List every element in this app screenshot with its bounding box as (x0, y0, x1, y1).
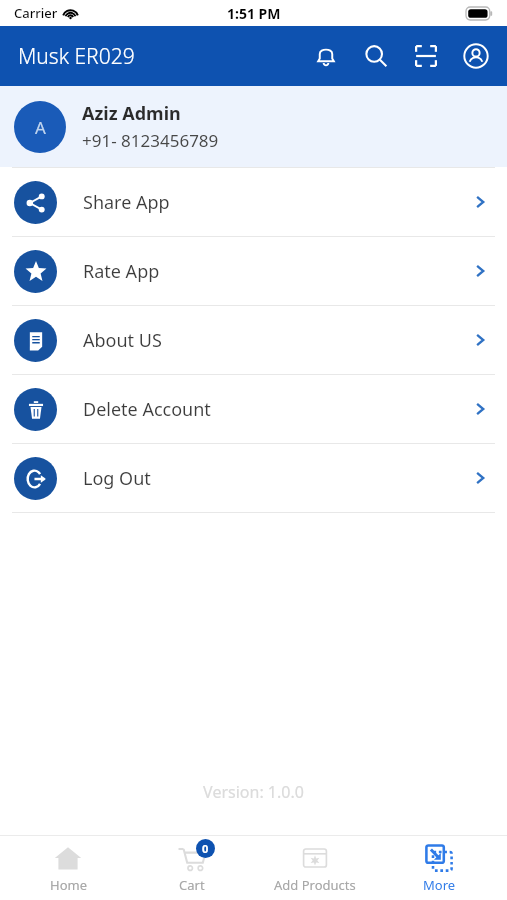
staticText: 1:51 PM (227, 4, 281, 23)
staticText: Delete Account (83, 397, 211, 422)
staticText: A (35, 116, 46, 139)
staticText: Home (50, 876, 87, 894)
staticText: Add Products (274, 876, 356, 894)
staticText: Musk ER029 (18, 42, 135, 71)
staticText: Share App (83, 190, 170, 215)
button[interactable]: Rate App (0, 237, 507, 305)
button[interactable]: Home (13, 843, 123, 894)
button[interactable]: A (0, 86, 507, 167)
button[interactable]: Log Out (0, 444, 507, 512)
staticText: Carrier (14, 4, 58, 22)
button[interactable]: Notifications (309, 39, 343, 73)
staticText: More (423, 876, 456, 894)
staticText: Cart (179, 876, 205, 894)
staticText: Rate App (83, 259, 160, 284)
button[interactable]: About US (0, 306, 507, 374)
staticText: Aziz Admin (82, 101, 181, 126)
button[interactable]: Scan (409, 39, 443, 73)
button[interactable]: More (384, 843, 494, 894)
button[interactable]: Add Products (260, 843, 370, 894)
staticText: Version: 1.0.0 (0, 781, 507, 803)
button[interactable]: Delete Account (0, 375, 507, 443)
staticText: About US (83, 328, 162, 353)
button[interactable]: Search (359, 39, 393, 73)
staticText: +91- 8123456789 (82, 129, 219, 152)
staticText: 0 (202, 841, 209, 856)
staticText: Log Out (83, 466, 151, 491)
button[interactable]: Account (459, 39, 493, 73)
button[interactable]: 0 (137, 843, 247, 894)
button[interactable]: Share App (0, 168, 507, 236)
